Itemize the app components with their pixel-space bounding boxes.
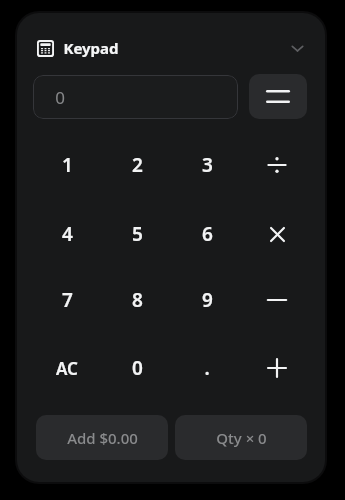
staticText: 4 — [62, 221, 73, 247]
button[interactable]: 6 — [174, 203, 240, 265]
button[interactable]: 3 — [174, 134, 240, 196]
button[interactable]: Divide — [244, 134, 310, 196]
button[interactable]: Collapse keypad — [283, 35, 311, 61]
staticText: 8 — [132, 287, 143, 313]
staticText: Qty × 0 — [216, 428, 267, 448]
staticText: 5 — [132, 221, 143, 247]
button[interactable]: Multiply — [244, 203, 310, 265]
staticText: Keypad — [63, 38, 119, 58]
button[interactable]: 8 — [104, 269, 170, 331]
button[interactable]: 5 — [104, 203, 170, 265]
button[interactable]: Add — [244, 337, 310, 399]
button[interactable]: 9 — [174, 269, 240, 331]
button[interactable]: All clear — [34, 337, 100, 399]
button[interactable]: 1 — [34, 134, 100, 196]
staticText: 9 — [202, 287, 213, 313]
staticText: 0 — [132, 355, 143, 381]
button[interactable]: 4 — [34, 203, 100, 265]
button[interactable]: Amount input — [33, 75, 238, 119]
staticText: . — [204, 355, 210, 381]
staticText: AC — [56, 357, 78, 380]
button[interactable]: Add $0.00 — [36, 415, 168, 460]
button[interactable]: Qty × 0 — [175, 415, 307, 460]
staticText: 1 — [62, 152, 73, 178]
staticText: Add $0.00 — [67, 428, 138, 448]
staticText: 2 — [132, 152, 143, 178]
button[interactable]: Subtract — [244, 269, 310, 331]
staticText: 3 — [202, 152, 213, 178]
button[interactable]: Equals — [249, 74, 307, 119]
button[interactable]: 7 — [34, 269, 100, 331]
staticText: 0 — [55, 86, 65, 109]
button[interactable]: Decimal point — [174, 337, 240, 399]
button[interactable]: 2 — [104, 134, 170, 196]
button[interactable]: 0 — [104, 337, 170, 399]
staticText: 6 — [202, 221, 213, 247]
staticText: 7 — [62, 287, 73, 313]
